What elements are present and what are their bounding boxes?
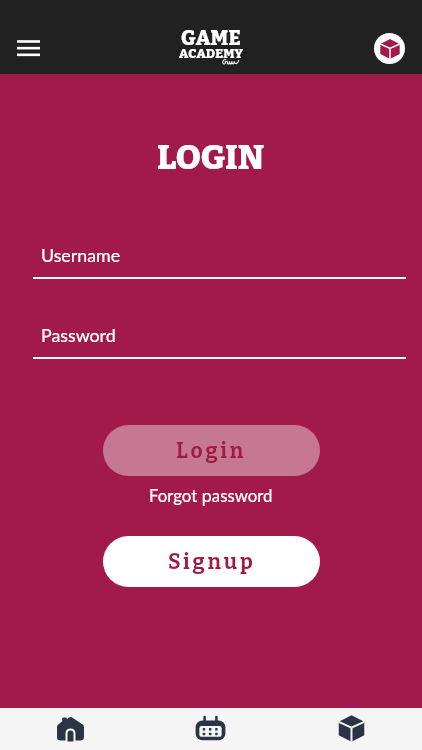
- button[interactable]: Calendar: [140, 708, 281, 750]
- staticText: Forgot password: [149, 484, 273, 507]
- button[interactable]: Home: [0, 708, 140, 750]
- button[interactable]: Login: [103, 425, 320, 476]
- staticText: Signup: [168, 549, 256, 574]
- button[interactable]: Password: [0, 324, 422, 360]
- staticText: GAME: [181, 26, 242, 51]
- button[interactable]: Username: [0, 244, 422, 280]
- button[interactable]: Forgot password: [143, 482, 279, 509]
- button[interactable]: Game Academy: [151, 22, 271, 62]
- button[interactable]: Open navigation menu: [4, 24, 52, 72]
- button[interactable]: Products: [281, 708, 422, 750]
- staticText: ACADEMY: [179, 46, 244, 62]
- staticText: Login: [176, 438, 247, 463]
- staticText: Username: [41, 244, 121, 265]
- staticText: Password: [41, 324, 116, 345]
- button[interactable]: Account: [374, 33, 405, 64]
- button[interactable]: Signup: [103, 536, 320, 587]
- staticText: LOGIN: [157, 137, 265, 178]
